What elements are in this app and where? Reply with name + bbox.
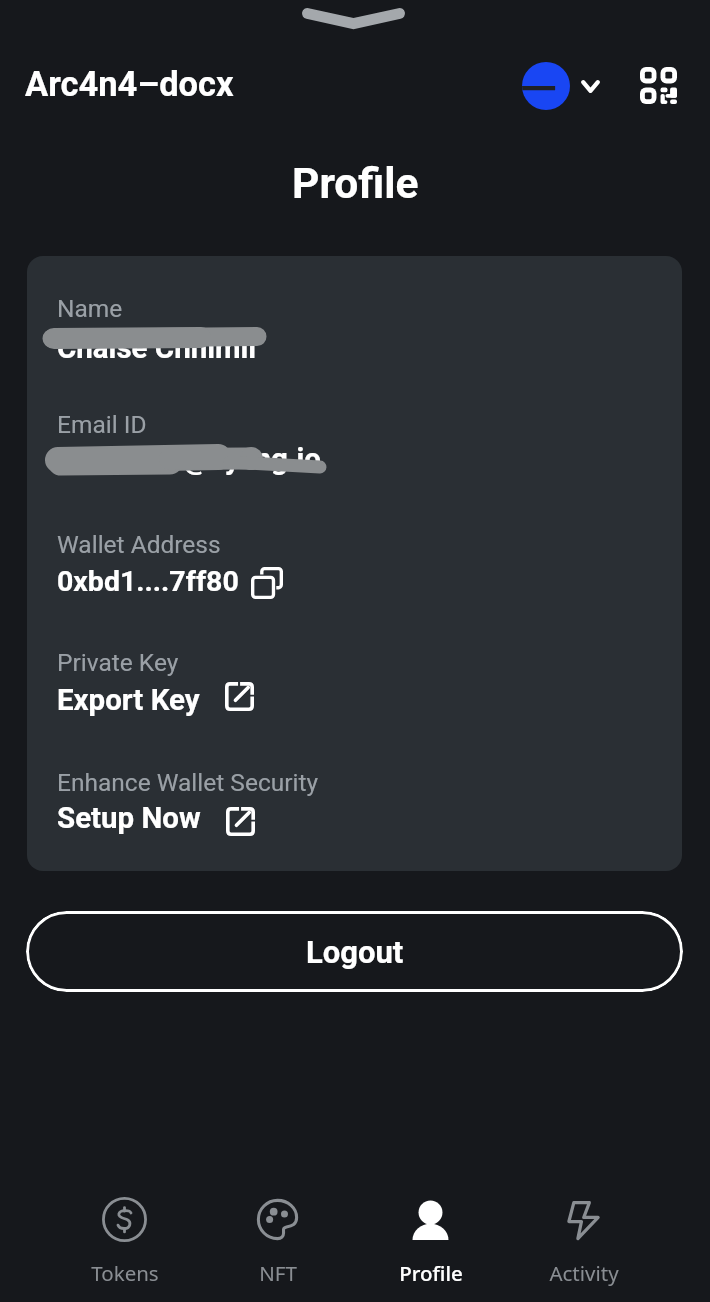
staticText: Setup Now (57, 801, 201, 836)
staticText: Enhance Wallet Security (57, 768, 319, 797)
staticText: Activity (549, 1259, 619, 1287)
staticText: Profile (292, 159, 419, 209)
staticText: chaise.ck@xyzng.io (57, 442, 321, 477)
staticText: Email ID (57, 410, 147, 439)
button[interactable]: Arc4n4–docx (25, 64, 234, 104)
staticText: Private Key (57, 648, 179, 677)
staticText: 0xbd1....7ff80 (57, 565, 239, 598)
staticText: Logout (306, 934, 404, 970)
button[interactable]: Scan QR code (628, 55, 688, 115)
button[interactable]: NFT (201, 1192, 354, 1287)
button[interactable]: Tokens (48, 1192, 201, 1287)
button[interactable]: Switch account (522, 62, 600, 110)
button[interactable]: Activity (507, 1192, 660, 1287)
button[interactable]: Profile (354, 1192, 507, 1287)
staticText: Name (57, 294, 123, 323)
button[interactable]: Setup Now (57, 801, 255, 836)
staticText: Chaise Chhimii (57, 331, 257, 366)
staticText: Wallet Address (57, 530, 221, 559)
button[interactable]: Copy wallet address (249, 563, 285, 599)
staticText: Profile (399, 1259, 463, 1287)
staticText: Arc4n4–docx (25, 64, 234, 104)
button[interactable]: Export Key (57, 683, 254, 718)
staticText: NFT (259, 1259, 297, 1287)
button[interactable]: Logout (26, 911, 683, 992)
staticText: Export Key (57, 683, 200, 718)
staticText: Tokens (91, 1259, 159, 1287)
